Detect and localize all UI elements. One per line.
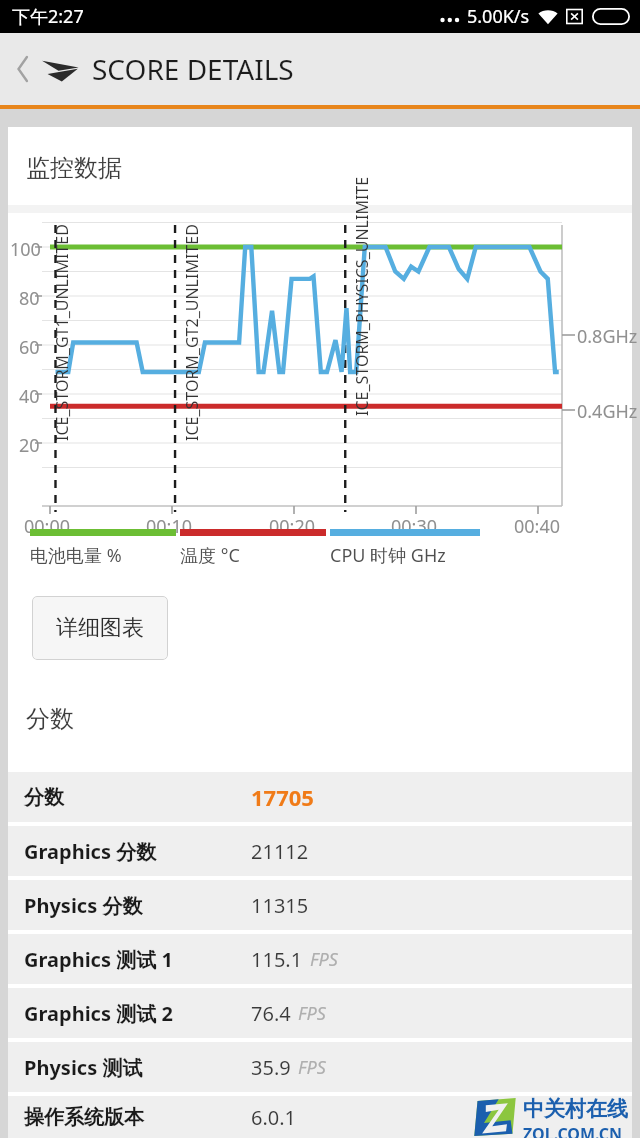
staticText: ZOL.COM.CN bbox=[523, 1123, 623, 1138]
staticText: 60 bbox=[19, 335, 40, 360]
button[interactable]: Graphics 分数 bbox=[8, 826, 632, 876]
staticText: FPS bbox=[298, 1055, 326, 1080]
staticText: 35.9 bbox=[251, 1054, 291, 1081]
staticText: 00:40 bbox=[514, 514, 561, 539]
button[interactable]: Graphics 测试 1 bbox=[8, 934, 632, 984]
button[interactable]: Physics 测试 bbox=[8, 1042, 632, 1092]
staticText: ICE_STORM_GT1_UNLIMITED bbox=[51, 224, 73, 441]
staticText: SCORE DETAILS bbox=[92, 50, 294, 88]
staticText: 17705 bbox=[251, 782, 314, 812]
staticText: 00:20 bbox=[269, 514, 316, 539]
staticText: CPU 时钟 GHz bbox=[330, 543, 446, 568]
staticText: 分数 bbox=[26, 704, 74, 734]
staticText: 下午2:27 bbox=[12, 4, 84, 29]
staticText: 100 bbox=[10, 237, 41, 262]
staticText: 中关村在线 bbox=[523, 1096, 628, 1122]
staticText: 监控数据 bbox=[26, 153, 122, 183]
staticText: 00:00 bbox=[24, 514, 71, 539]
staticText: 详细图表 bbox=[56, 614, 144, 642]
staticText: 40 bbox=[19, 384, 40, 409]
staticText: 0.4GHz bbox=[577, 399, 638, 424]
button[interactable]: Physics 分数 bbox=[8, 880, 632, 930]
staticText: 115.1 bbox=[251, 946, 303, 973]
staticText: Physics 测试 bbox=[24, 1054, 143, 1081]
button[interactable]: 操作系统版本 bbox=[8, 1096, 632, 1138]
button[interactable]: Back bbox=[6, 43, 40, 95]
staticText: 5.00K/s bbox=[467, 4, 530, 29]
staticText: ICE_STORM_GT2_UNLIMITED bbox=[181, 224, 203, 441]
staticText: 操作系统版本 bbox=[24, 1105, 144, 1130]
staticText: 21112 bbox=[251, 838, 309, 865]
staticText: Physics 分数 bbox=[24, 892, 143, 919]
button[interactable]: 详细图表 bbox=[32, 596, 168, 660]
staticText: FPS bbox=[298, 1001, 326, 1026]
staticText: Graphics 测试 2 bbox=[24, 1000, 173, 1027]
staticText: Graphics 测试 1 bbox=[24, 946, 173, 973]
staticText: FPS bbox=[310, 947, 338, 972]
staticText: 11315 bbox=[251, 892, 309, 919]
staticText: 80 bbox=[19, 286, 40, 311]
staticText: 0.8GHz bbox=[577, 324, 638, 349]
button[interactable]: 分数 bbox=[8, 772, 632, 822]
staticText: 温度 °C bbox=[180, 543, 240, 568]
staticText: 电池电量 % bbox=[30, 543, 122, 568]
staticText: 6.0.1 bbox=[251, 1104, 297, 1131]
staticText: ICE_STORM_PHYSICS_UNLIMITED bbox=[351, 176, 373, 416]
staticText: 分数 bbox=[24, 785, 64, 810]
staticText: 76.4 bbox=[251, 1000, 291, 1027]
staticText: Graphics 分数 bbox=[24, 838, 157, 865]
staticText: 20 bbox=[19, 433, 40, 458]
button[interactable]: Graphics 测试 2 bbox=[8, 988, 632, 1038]
staticText: 00:30 bbox=[391, 514, 438, 539]
staticText: 00:10 bbox=[146, 514, 193, 539]
